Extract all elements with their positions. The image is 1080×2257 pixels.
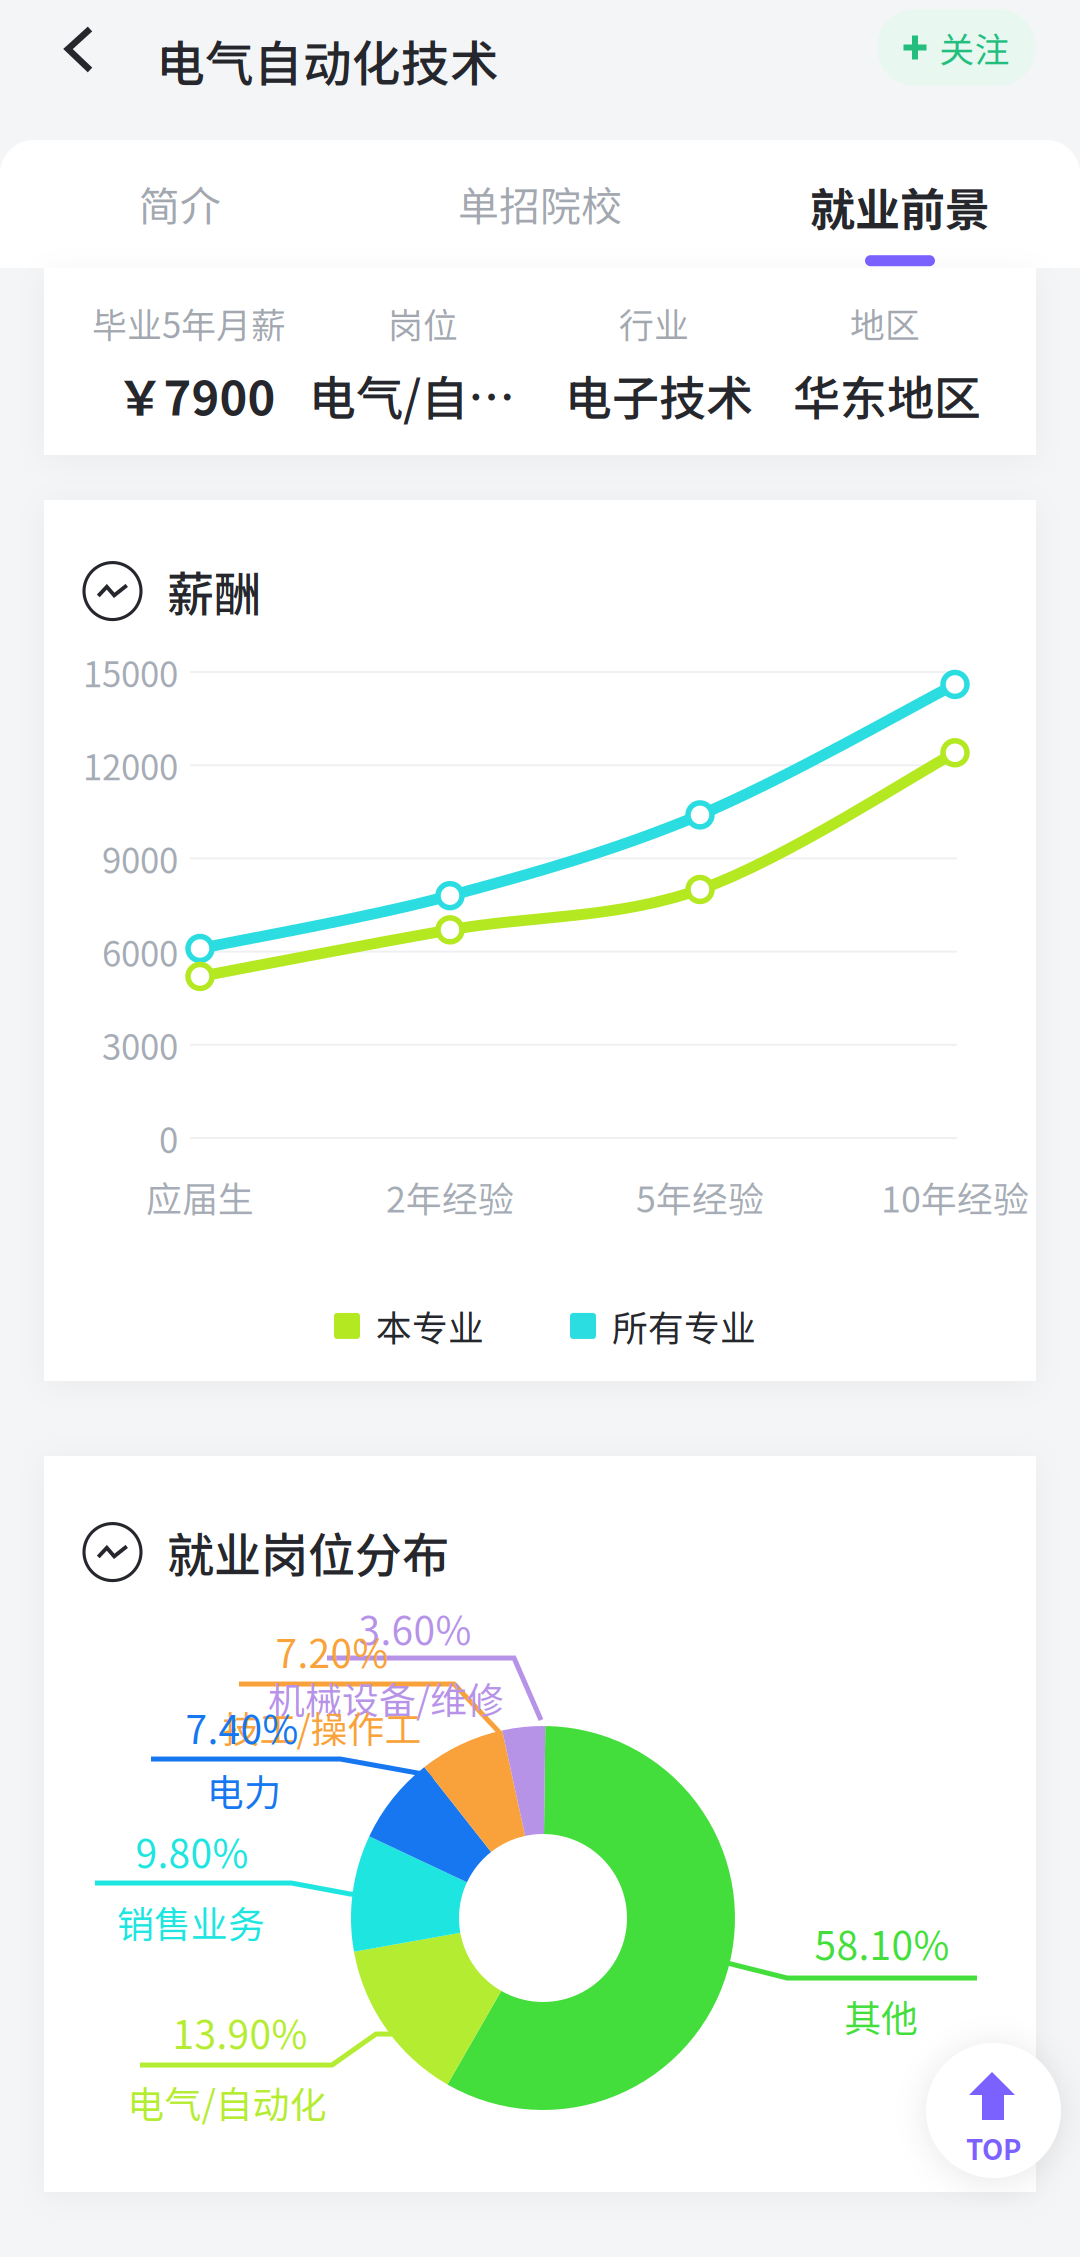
staticText: 6000 <box>102 926 178 977</box>
staticText: 7.20% <box>275 1623 388 1679</box>
staticText: 就业岗位分布 <box>167 1518 449 1586</box>
staticText: 薪酬 <box>167 557 261 625</box>
staticText: 毕业5年月薪 <box>92 298 286 348</box>
staticText: 12000 <box>83 740 178 790</box>
button[interactable]: Back <box>30 0 128 100</box>
staticText: 机械设备/维修 <box>268 1671 504 1725</box>
staticText: 单招院校 <box>458 174 622 233</box>
staticText: 所有专业 <box>612 1300 756 1352</box>
staticText: 应届生 <box>146 1171 254 1223</box>
staticText: 就业前景 <box>810 174 990 239</box>
staticText: TOP <box>966 2128 1021 2168</box>
staticText: ￥7900 <box>116 361 275 429</box>
staticText: 电气自动化技术 <box>156 25 499 95</box>
staticText: 2年经验 <box>386 1171 514 1223</box>
button[interactable]: Back to top <box>926 2043 1061 2178</box>
staticText: 简介 <box>139 174 221 233</box>
staticText: 3.60% <box>358 1600 471 1656</box>
staticText: 15000 <box>83 647 178 697</box>
staticText: 销售业务 <box>117 1895 265 1949</box>
staticText: 关注 <box>939 22 1009 73</box>
staticText: 电子技术 <box>565 361 753 429</box>
staticText: 电气/自… <box>309 361 515 429</box>
staticText: 9.80% <box>135 1823 248 1879</box>
staticText: 地区 <box>850 298 920 348</box>
staticText: 9000 <box>102 833 178 884</box>
staticText: 7.40% <box>185 1699 298 1755</box>
staticText: 技工/操作工 <box>222 1700 421 1754</box>
staticText: 岗位 <box>388 298 458 348</box>
staticText: 其他 <box>844 1989 918 2043</box>
button[interactable]: 关注 <box>877 9 1036 86</box>
staticText: 10年经验 <box>881 1171 1029 1223</box>
staticText: 13.90% <box>172 2004 307 2060</box>
staticText: 5年经验 <box>636 1171 764 1223</box>
staticText: 58.10% <box>814 1915 949 1971</box>
button[interactable]: 就业前景 <box>720 140 1080 268</box>
staticText: 电力 <box>207 1763 281 1817</box>
button[interactable]: 简介 <box>0 140 360 268</box>
staticText: 本专业 <box>376 1300 484 1352</box>
staticText: 华东地区 <box>793 361 981 429</box>
button[interactable]: 单招院校 <box>360 140 720 268</box>
staticText: 电气/自动化 <box>127 2075 326 2129</box>
staticText: 3000 <box>102 1020 178 1070</box>
staticText: 0 <box>159 1113 178 1163</box>
staticText: 行业 <box>619 298 689 348</box>
